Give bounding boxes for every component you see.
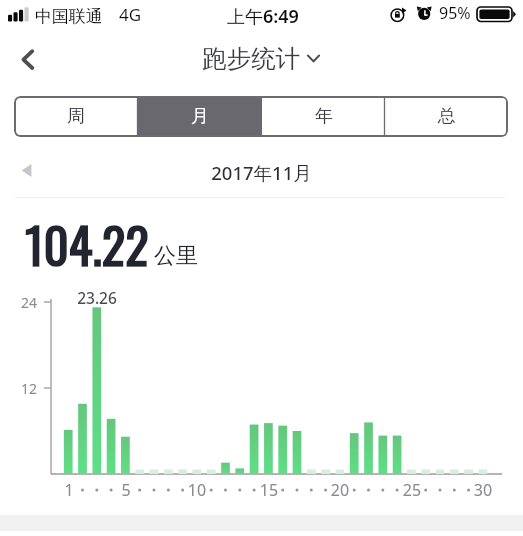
staticText: 跑步统计 bbox=[202, 43, 300, 74]
staticText: 上午6:49 bbox=[227, 4, 299, 29]
staticText: 24 bbox=[14, 293, 37, 312]
button[interactable]: Previous month bbox=[9, 152, 45, 188]
staticText: 2017年11月 bbox=[0, 160, 523, 185]
staticText: 20 bbox=[328, 479, 352, 501]
staticText: 5 bbox=[114, 479, 138, 501]
staticText: 25 bbox=[400, 479, 424, 501]
staticText: 1 bbox=[57, 479, 81, 501]
staticText: 周 bbox=[67, 105, 85, 128]
staticText: 23.26 bbox=[72, 287, 122, 308]
staticText: 104.22 bbox=[25, 208, 149, 281]
staticText: 总 bbox=[438, 105, 456, 128]
staticText: 年 bbox=[315, 105, 333, 128]
button[interactable]: 跑步统计 bbox=[202, 43, 320, 74]
button[interactable]: 总 bbox=[386, 96, 508, 137]
button[interactable]: 年 bbox=[262, 96, 386, 137]
button[interactable]: Back bbox=[5, 38, 49, 82]
staticText: 10 bbox=[185, 479, 209, 501]
staticText: 月 bbox=[191, 105, 209, 128]
staticText: 15 bbox=[257, 479, 281, 501]
button[interactable]: 月 bbox=[138, 96, 262, 137]
staticText: 12 bbox=[14, 379, 37, 398]
staticText: 中国联通 bbox=[35, 6, 103, 27]
staticText: 95% bbox=[439, 2, 471, 24]
staticText: 30 bbox=[471, 479, 495, 501]
staticText: 公里 bbox=[154, 242, 198, 270]
staticText: 4G bbox=[119, 3, 142, 26]
button[interactable]: 周 bbox=[14, 96, 138, 137]
